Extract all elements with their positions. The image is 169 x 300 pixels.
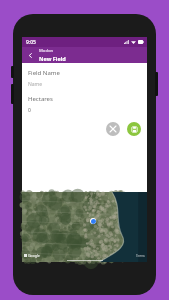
button[interactable]: Navigate up: [25, 50, 36, 61]
button[interactable]: Save: [127, 122, 141, 136]
staticText: 9:05: [26, 39, 36, 46]
staticText: Google: [28, 253, 40, 258]
staticText: Name: [28, 81, 43, 88]
staticText: Terms: [136, 254, 145, 258]
staticText: Hectares: [28, 95, 53, 103]
staticText: Modon: [39, 48, 54, 54]
button[interactable]: Map: [22, 192, 147, 262]
button[interactable]: Name: [28, 81, 141, 88]
button[interactable]: Cancel: [106, 122, 120, 136]
staticText: 0: [28, 107, 31, 114]
staticText: Field Name: [28, 69, 60, 77]
staticText: New Field: [39, 55, 66, 62]
